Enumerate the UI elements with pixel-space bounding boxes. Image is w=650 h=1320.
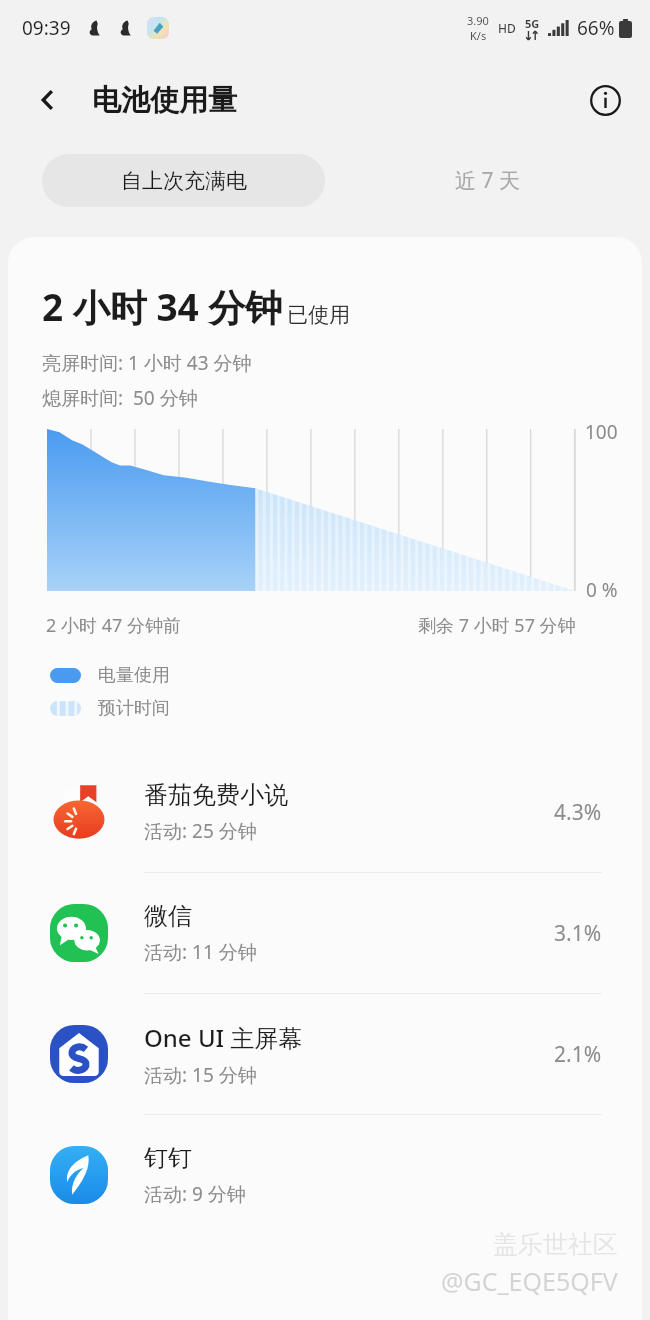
staticText: 0 % xyxy=(586,577,618,603)
staticText: 4.3% xyxy=(554,798,602,827)
staticText: 预计时间 xyxy=(98,697,170,720)
staticText: 剩余 7 小时 57 分钟 xyxy=(418,613,576,638)
staticText: 3.1% xyxy=(554,919,602,948)
staticText: 熄屏时间: 50 分钟 xyxy=(42,385,198,411)
staticText: 活动: 9 分钟 xyxy=(144,1181,246,1207)
button[interactable]: 番茄免费小说 xyxy=(8,752,642,872)
staticText: 5G xyxy=(525,16,540,31)
staticText: 番茄免费小说 xyxy=(144,780,288,810)
staticText: 活动: 11 分钟 xyxy=(144,939,257,965)
staticText: One UI 主屏幕 xyxy=(144,1021,303,1054)
staticText: 活动: 15 分钟 xyxy=(144,1062,257,1088)
button[interactable]: 近 7 天 xyxy=(325,154,650,207)
staticText: 2 小时 34 分钟 xyxy=(42,281,283,332)
button[interactable]: One UI 主屏幕 xyxy=(8,994,642,1114)
staticText: 微信 xyxy=(144,901,192,931)
staticText: 活动: 25 分钟 xyxy=(144,818,257,844)
staticText: K/s xyxy=(470,28,487,43)
button[interactable]: Information xyxy=(582,77,628,123)
staticText: 09:39 xyxy=(22,15,71,41)
staticText: HD xyxy=(498,20,516,36)
staticText: 2 小时 47 分钟前 xyxy=(46,613,181,638)
staticText: 电池使用量 xyxy=(92,82,237,119)
button[interactable]: 自上次充满电 xyxy=(42,154,325,207)
button[interactable]: 微信 xyxy=(8,873,642,993)
staticText: 3.90 xyxy=(467,13,489,28)
staticText: 盖乐世社区 xyxy=(493,1229,618,1260)
staticText: 100 xyxy=(585,419,618,445)
staticText: 近 7 天 xyxy=(455,166,520,195)
button[interactable]: 钉钉 xyxy=(8,1115,642,1235)
staticText: 亮屏时间: 1 小时 43 分钟 xyxy=(42,350,252,376)
staticText: 自上次充满电 xyxy=(121,168,247,194)
staticText: 钉钉 xyxy=(144,1143,192,1173)
staticText: 电量使用 xyxy=(98,664,170,687)
staticText: 66% xyxy=(577,15,615,41)
staticText: 已使用 xyxy=(287,302,350,328)
staticText: 2.1% xyxy=(554,1040,602,1069)
button[interactable]: Back xyxy=(26,78,70,122)
staticText: @GC_EQE5QFV xyxy=(441,1264,618,1298)
